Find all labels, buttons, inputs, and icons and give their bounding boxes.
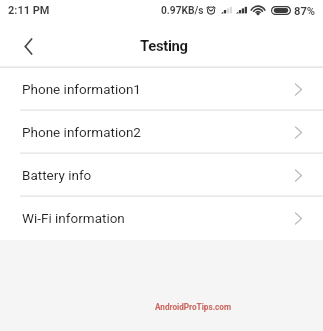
staticText: Testing [140,37,188,54]
staticText: Wi-Fi information [22,210,125,226]
button[interactable]: Phone information1 [0,68,323,111]
staticText: 2:11 PM [8,4,50,17]
button[interactable]: Wi-Fi information [0,197,323,240]
staticText: 87% [294,5,316,18]
button[interactable]: Phone information2 [0,111,323,154]
staticText: Phone information2 [22,124,141,140]
staticText: 0.97KB/s [161,5,204,17]
button[interactable]: Back [12,30,44,62]
staticText: AndroidProTips.com [155,302,232,312]
staticText: Phone information1 [22,81,141,97]
button[interactable]: Battery info [0,154,323,197]
staticText: Battery info [22,167,92,183]
